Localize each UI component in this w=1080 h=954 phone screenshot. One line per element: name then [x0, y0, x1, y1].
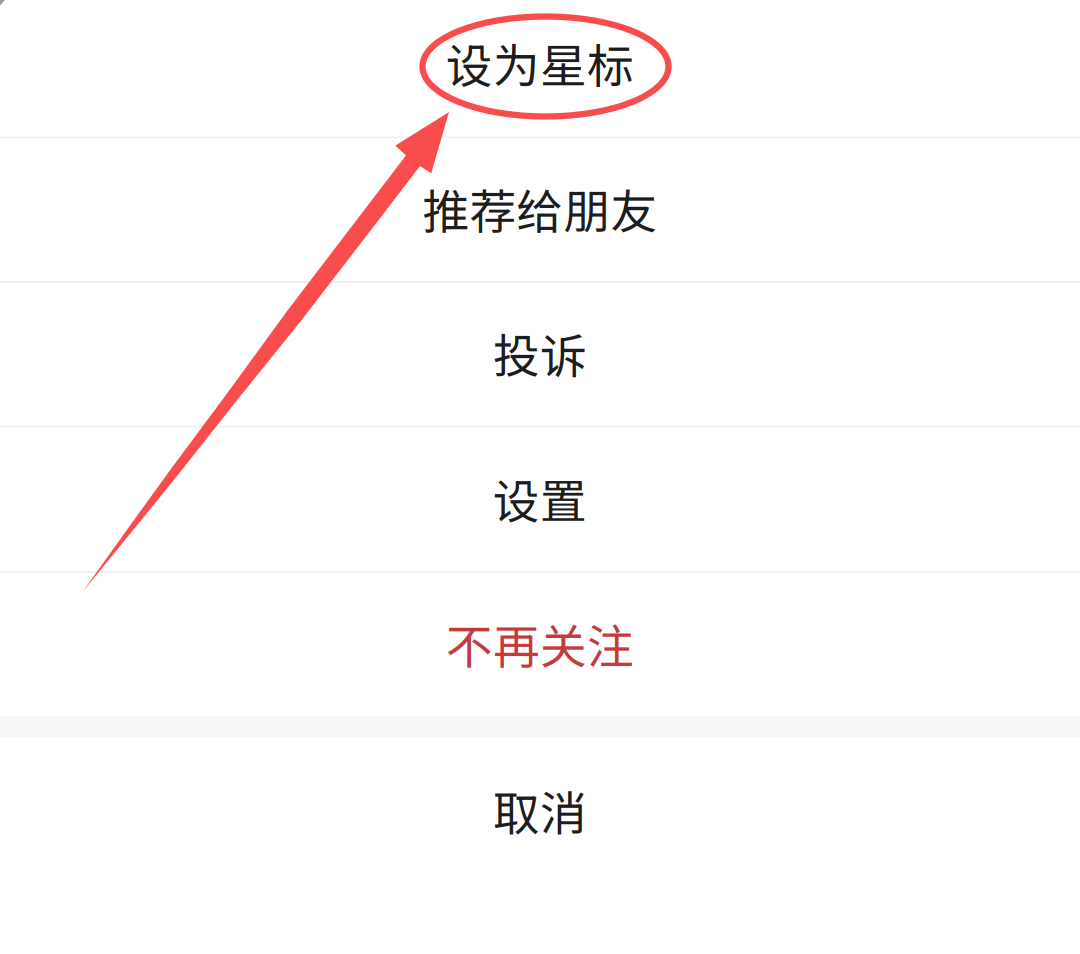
staticText: 取消 [493, 776, 587, 844]
button[interactable]: 投诉 [0, 283, 1080, 426]
staticText: 设为星标 [446, 29, 634, 97]
staticText: 不再关注 [446, 610, 634, 677]
staticText: 投诉 [493, 319, 587, 387]
button[interactable]: 取消 [0, 737, 1080, 886]
button[interactable]: 不再关注 [0, 573, 1080, 716]
button[interactable]: 推荐给朋友 [0, 138, 1080, 281]
button[interactable]: 设置 [0, 428, 1080, 571]
button[interactable]: 设为星标 [0, 0, 1080, 136]
staticText: 推荐给朋友 [422, 174, 657, 242]
staticText: 设置 [493, 464, 587, 532]
